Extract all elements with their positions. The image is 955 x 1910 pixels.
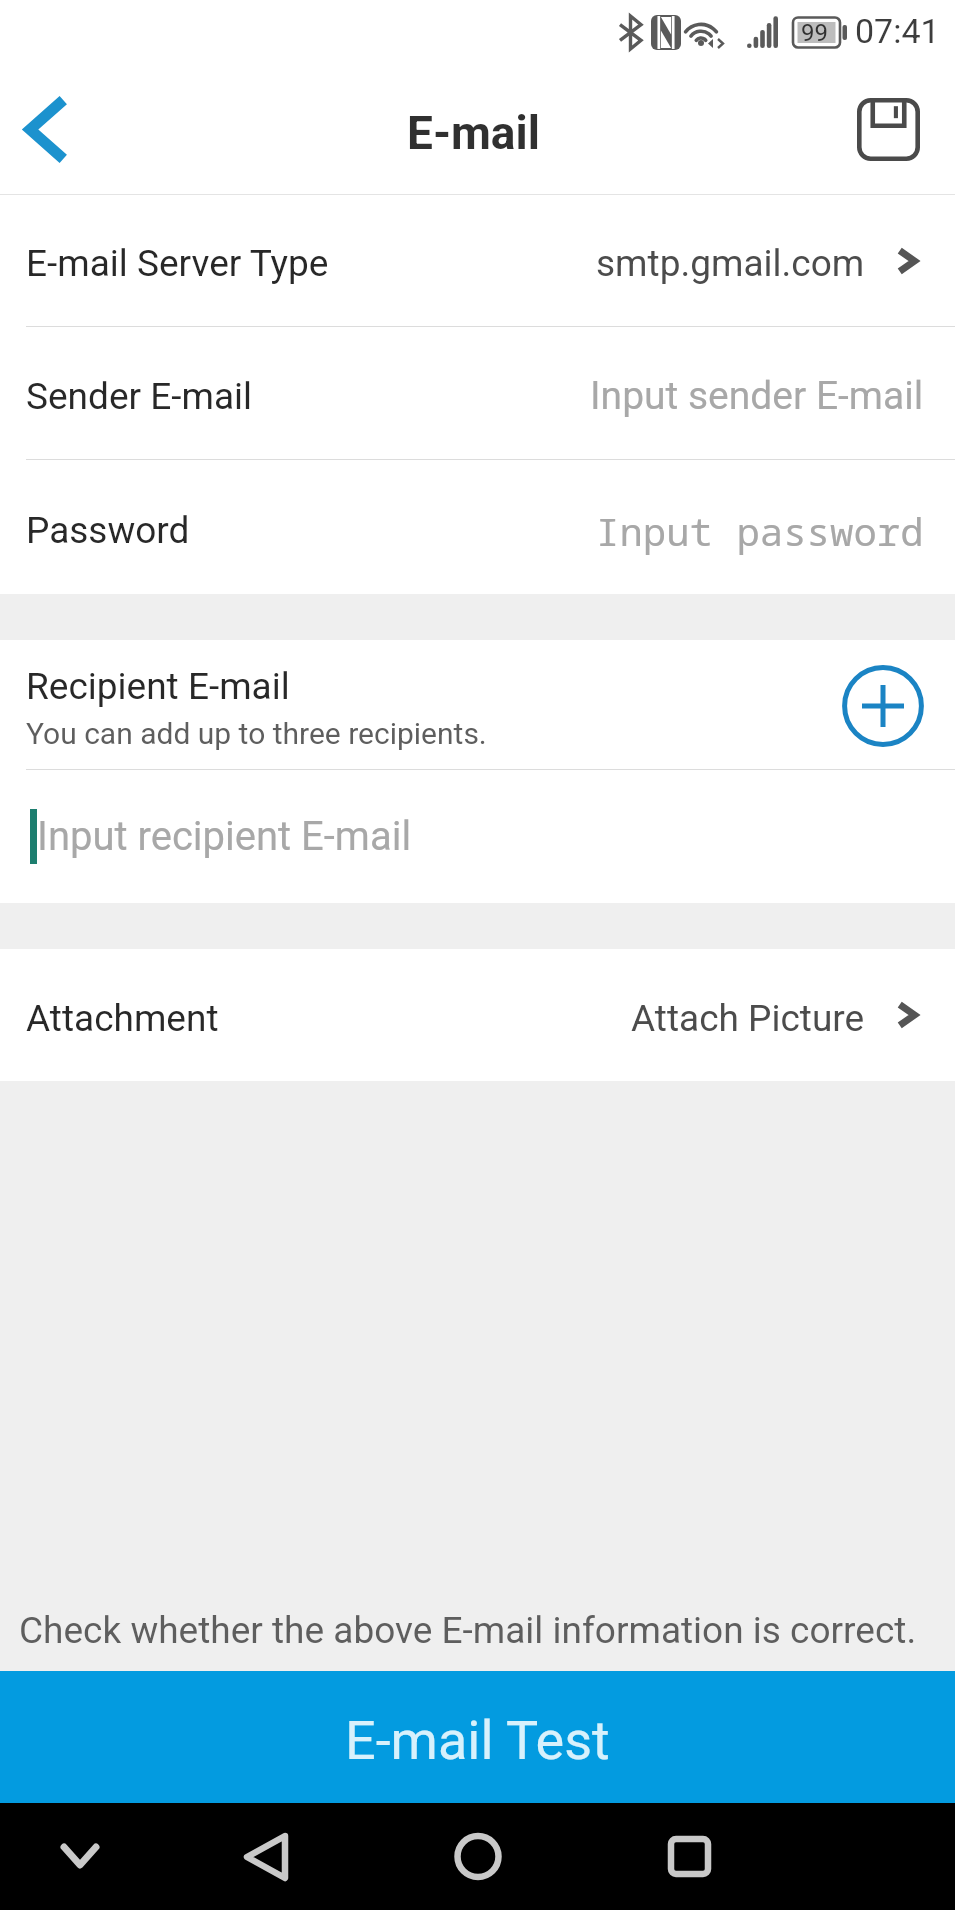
button[interactable]: Recipient E-mail bbox=[0, 640, 955, 769]
button[interactable]: E-mail Server Type bbox=[0, 195, 955, 326]
staticText: E-mail Server Type bbox=[26, 242, 329, 285]
button[interactable]: Recents bbox=[604, 1803, 776, 1910]
button[interactable]: Attachment bbox=[0, 949, 955, 1081]
staticText: E-mail bbox=[407, 106, 540, 160]
staticText: Input password bbox=[596, 504, 924, 557]
staticText: You can add up to three recipients. bbox=[26, 716, 487, 751]
button[interactable]: Input recipient E-mail bbox=[0, 770, 955, 903]
staticText: Check whether the above E-mail informati… bbox=[19, 1609, 917, 1652]
staticText: Sender E-mail bbox=[26, 375, 253, 418]
button[interactable]: Back bbox=[180, 1803, 352, 1910]
button[interactable]: Add recipient bbox=[840, 662, 926, 748]
staticText: Input sender E-mail bbox=[590, 373, 924, 419]
staticText: Input recipient E-mail bbox=[37, 813, 412, 860]
staticText: smtp.gmail.com bbox=[596, 242, 865, 285]
button[interactable]: Home bbox=[392, 1803, 564, 1910]
staticText: Attach Picture bbox=[631, 997, 865, 1040]
button[interactable]: E-mail Test bbox=[0, 1671, 955, 1803]
staticText: Recipient E-mail bbox=[26, 665, 290, 708]
button[interactable]: Save bbox=[845, 64, 955, 195]
button[interactable]: Back bbox=[0, 64, 92, 195]
button[interactable]: Sender E-mail bbox=[0, 327, 955, 459]
staticText: 99 bbox=[801, 19, 828, 47]
staticText: Attachment bbox=[26, 997, 219, 1040]
staticText: Password bbox=[26, 509, 190, 552]
staticText: 07:41 bbox=[855, 11, 940, 51]
button[interactable]: Password bbox=[0, 460, 955, 594]
button[interactable]: Hide keyboard bbox=[0, 1803, 166, 1910]
staticText: E-mail Test bbox=[345, 1709, 610, 1772]
